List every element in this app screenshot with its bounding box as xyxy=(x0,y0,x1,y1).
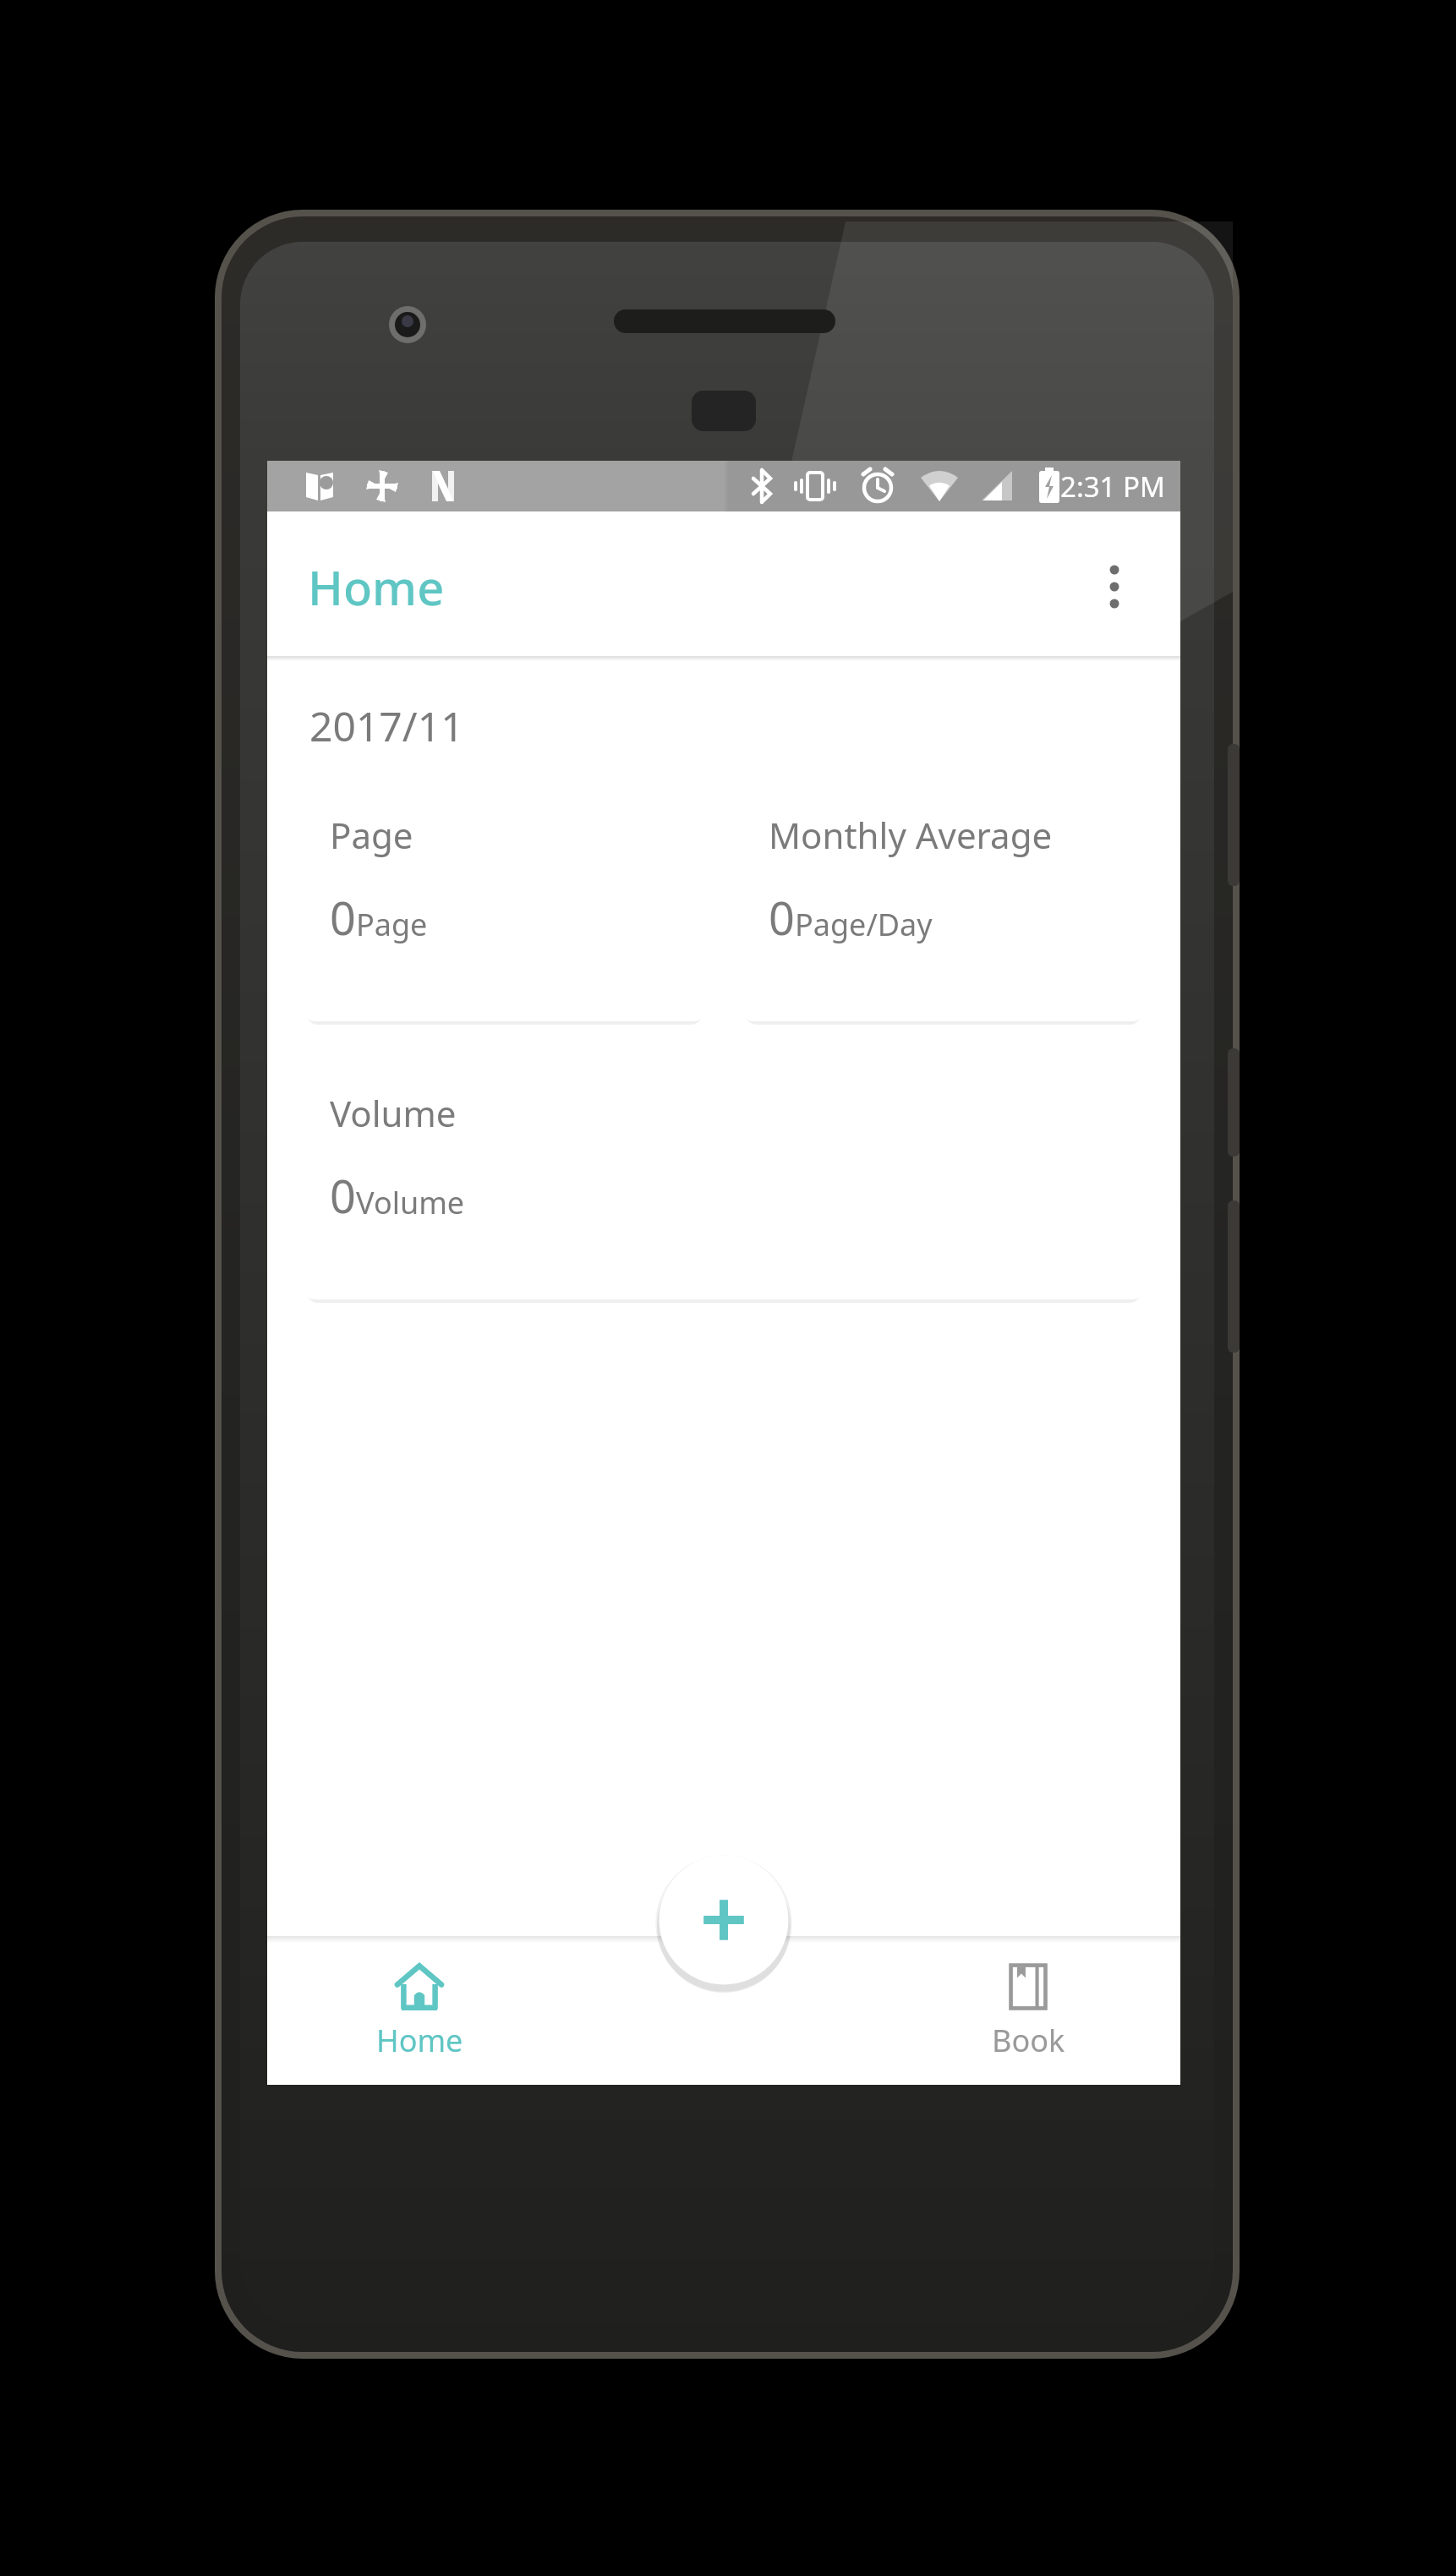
staticText: Monthly Average xyxy=(769,811,1053,859)
button[interactable]: Book xyxy=(876,1936,1180,2085)
staticText: 0 xyxy=(769,886,795,949)
staticText: Volume xyxy=(356,1182,465,1223)
button[interactable]: More options xyxy=(1069,541,1160,632)
staticText: 2017/11 xyxy=(309,698,464,753)
button[interactable]: Home xyxy=(267,1936,572,2085)
staticText: 2:31 PM xyxy=(1060,468,1165,506)
staticText: Page/Day xyxy=(795,904,933,945)
staticText: Home xyxy=(308,555,445,619)
staticText: Page xyxy=(356,904,428,945)
staticText: 0 xyxy=(330,1164,356,1227)
staticText: Page xyxy=(330,811,413,859)
button[interactable]: Add xyxy=(652,1848,796,1992)
button[interactable]: Page xyxy=(304,782,704,1021)
button[interactable]: Volume xyxy=(304,1060,1143,1299)
staticText: Book xyxy=(992,2020,1065,2061)
staticText: Volume xyxy=(330,1089,457,1137)
button[interactable]: Monthly Average xyxy=(743,782,1143,1021)
staticText: Home xyxy=(376,2020,463,2061)
staticText: 0 xyxy=(330,886,356,949)
